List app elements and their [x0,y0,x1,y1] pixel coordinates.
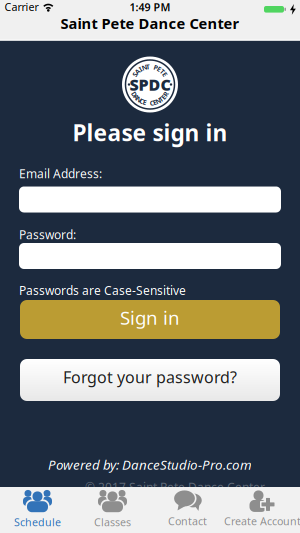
staticText: P [154,63,158,72]
staticText: Create Account [224,514,300,528]
staticText: 1:49 PM [129,0,170,14]
button[interactable] [19,243,281,269]
staticText: Contact [168,514,207,528]
staticText: A [135,67,140,76]
button[interactable]: Powered by: DanceStudio-Pro.com [48,456,252,473]
staticText: E [157,65,161,74]
staticText: Forgot your password? [63,366,237,388]
button[interactable]: Schedule [0,487,75,533]
staticText: A [134,93,139,101]
button[interactable] [19,186,281,212]
staticText: Password: [19,226,76,242]
staticText: E [162,93,166,101]
staticText: Powered by: DanceStudio-Pro.com [48,456,252,473]
staticText: Saint Pete Dance Center [60,13,239,33]
staticText: D [132,90,137,99]
staticText: N [142,63,147,72]
staticText: T [160,67,164,76]
staticText: N [136,95,141,104]
staticText: E [153,98,157,107]
staticText: N [156,97,161,105]
staticText: T [146,62,150,71]
staticText: C [150,98,154,107]
staticText: T [159,95,163,104]
staticText: Please sign in [72,117,227,147]
button[interactable]: Create Account [225,487,300,533]
staticText: © 2017 Saint Pete Dance Center [85,479,265,495]
staticText: SPDC [129,74,170,95]
staticText: E [143,98,147,107]
staticText: Classes [94,515,131,529]
button[interactable]: Contact [150,487,225,533]
staticText: C [140,97,144,105]
staticText: S [133,70,137,79]
button[interactable]: Forgot your password? [20,359,280,401]
button[interactable]: Classes [75,487,150,533]
staticText: Sign in [120,305,180,330]
staticText: R [164,90,168,99]
staticText: E [163,70,167,79]
staticText: Passwords are Case-Sensitive [19,282,186,298]
staticText: Schedule [14,515,61,529]
staticText: Email Address: [19,165,102,181]
button[interactable]: Sign in [20,300,280,339]
staticText: I [139,65,142,74]
staticText: Carrier [4,0,38,14]
